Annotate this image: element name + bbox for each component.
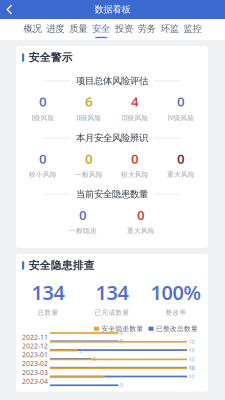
staticText: 一般隐患 — [69, 227, 97, 235]
staticText: 2022-12 — [22, 341, 48, 350]
button[interactable]: 进度 — [44, 18, 67, 41]
staticText: 5 — [120, 329, 123, 336]
staticText: II级风险 — [76, 113, 101, 122]
staticText: 安全警示 — [29, 51, 73, 64]
staticText: 10 — [188, 338, 194, 345]
staticText: 概况 — [23, 23, 41, 34]
staticText: 2023-02 — [22, 359, 48, 368]
staticText: 4 — [131, 93, 139, 110]
staticText: 环监 — [161, 23, 179, 34]
staticText: 数据看板 — [94, 4, 130, 15]
staticText: 5 — [120, 382, 123, 389]
staticText: 重大风险 — [127, 227, 155, 235]
staticText: 10 — [188, 373, 194, 380]
staticText: 2023-01 — [22, 350, 48, 359]
staticText: 投资 — [115, 23, 133, 34]
staticText: III级风险 — [121, 113, 148, 122]
staticText: 0 — [79, 206, 87, 224]
staticText: 10 — [188, 356, 194, 363]
staticText: 当前安全隐患数量 — [76, 188, 148, 200]
staticText: 2023-04 — [22, 377, 48, 386]
staticText: 重大风险 — [167, 170, 195, 178]
staticText: I级风险 — [31, 113, 54, 122]
staticText: 0 — [39, 93, 47, 110]
staticText: 劳务 — [138, 23, 156, 34]
staticText: 较小风险 — [29, 170, 57, 178]
staticText: 0 — [177, 93, 185, 110]
staticText: 本月安全风险辨识 — [76, 132, 148, 144]
staticText: 3 — [93, 355, 96, 362]
staticText: 监控 — [184, 23, 202, 34]
staticText: 0 — [39, 150, 47, 167]
staticText: 0 — [137, 206, 145, 224]
button[interactable]: 投资 — [112, 18, 135, 41]
staticText: 0 — [131, 150, 139, 167]
staticText: 安全 — [92, 23, 110, 34]
staticText: IV级风险 — [167, 113, 194, 122]
staticText: 安全隐患数量 — [101, 325, 143, 333]
staticText: 134 — [95, 279, 128, 306]
staticText: 10 — [188, 365, 194, 372]
button[interactable]: 环监 — [158, 18, 181, 41]
staticText: 整改率 — [165, 308, 186, 317]
staticText: 134 — [31, 279, 64, 306]
staticText: 0 — [177, 150, 185, 167]
staticText: 一般风险 — [75, 170, 103, 178]
staticText: 已整改总数量 — [156, 325, 198, 333]
staticText: 6 — [85, 93, 93, 110]
button[interactable]: 返回 — [0, 0, 21, 19]
staticText: 质量 — [69, 23, 87, 34]
button[interactable]: 概况 — [21, 18, 44, 41]
staticText: 项目总体风险评估 — [76, 75, 148, 87]
staticText: 进度 — [46, 23, 64, 34]
staticText: 0 — [85, 150, 93, 167]
staticText: 已完成数量 — [94, 308, 129, 317]
staticText: 2 — [79, 347, 82, 354]
staticText: 安全隐患排查 — [29, 259, 95, 272]
button[interactable]: 安全 — [90, 18, 112, 41]
staticText: 2022-11 — [22, 333, 48, 342]
staticText: 4 — [106, 373, 109, 380]
staticText: 100% — [150, 279, 201, 306]
staticText: 较大风险 — [121, 170, 149, 178]
staticText: 10 — [188, 364, 194, 371]
button[interactable]: 质量 — [67, 18, 90, 41]
staticText: 5 — [120, 338, 123, 345]
staticText: 2023-03 — [22, 368, 48, 377]
button[interactable]: 监控 — [181, 18, 204, 41]
button[interactable]: 劳务 — [135, 18, 158, 41]
staticText: 10 — [188, 346, 194, 354]
staticText: 总数量 — [37, 308, 58, 317]
